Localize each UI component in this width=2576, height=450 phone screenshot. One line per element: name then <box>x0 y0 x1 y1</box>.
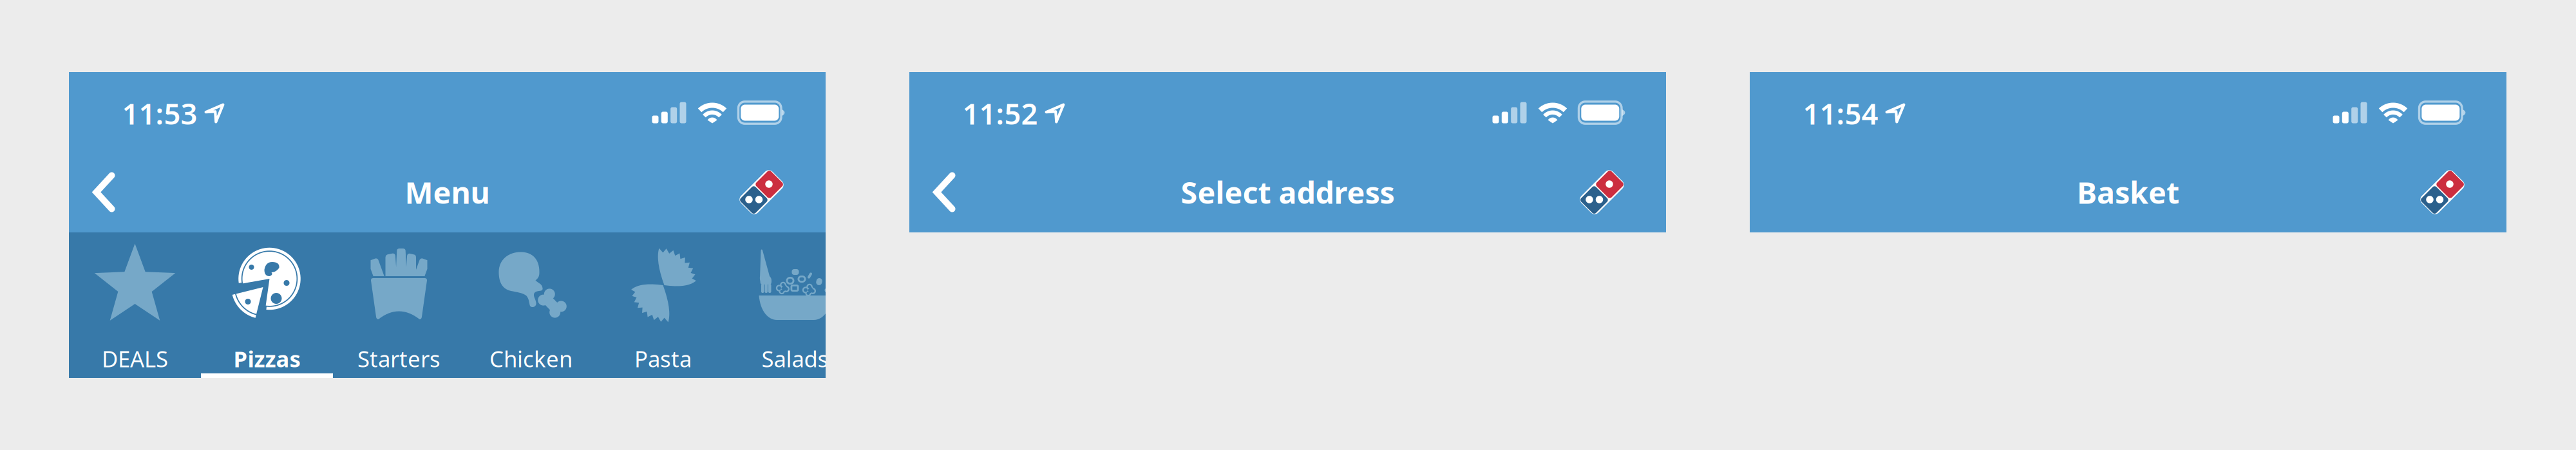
staticText: Basket <box>2077 172 2179 212</box>
button[interactable]: Starters <box>333 232 465 378</box>
button[interactable]: Pizzas <box>201 232 333 378</box>
button[interactable]: Domino's <box>731 161 792 223</box>
staticText: Pizzas <box>233 344 300 373</box>
button[interactable]: DEALS <box>69 232 201 378</box>
staticText: Menu <box>405 172 490 212</box>
button[interactable]: Chicken <box>465 232 597 378</box>
button[interactable]: Back <box>73 161 135 223</box>
staticText: Starters <box>357 344 440 373</box>
staticText: Pasta <box>634 344 692 373</box>
staticText: 11:54 <box>1803 94 1878 133</box>
staticText: Salads <box>762 344 829 373</box>
button[interactable]: Pasta <box>597 232 729 378</box>
button[interactable]: Domino's <box>1571 161 1633 223</box>
staticText: 11:52 <box>962 94 1038 133</box>
staticText: 11:53 <box>122 94 197 133</box>
staticText: Chicken <box>489 344 573 373</box>
button[interactable]: Back <box>914 161 975 223</box>
staticText: DEALS <box>102 344 168 373</box>
button[interactable]: Salads <box>729 232 861 378</box>
staticText: Select address <box>1181 172 1395 212</box>
button[interactable]: Domino's <box>2411 161 2473 223</box>
